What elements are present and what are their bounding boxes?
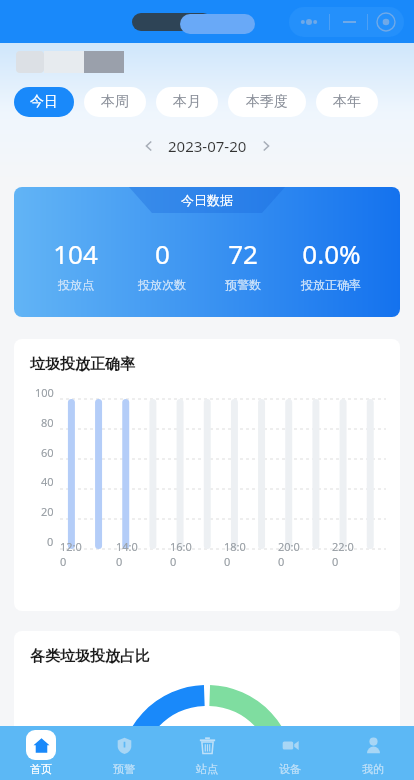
staticText: 2023-07-20 xyxy=(168,136,247,156)
button[interactable]: 本年 xyxy=(316,87,378,117)
button[interactable]: 今日数据 xyxy=(14,187,400,317)
staticText: 站点 xyxy=(196,762,218,776)
staticText: 设备 xyxy=(279,762,301,776)
staticText: 14:00 xyxy=(116,539,143,569)
staticText: 80 xyxy=(41,415,54,430)
staticText: 本月 xyxy=(173,93,201,111)
staticText: 各类垃圾投放占比 xyxy=(30,647,150,666)
staticText: 16:00 xyxy=(170,539,197,569)
staticText: 投放点 xyxy=(58,277,94,292)
staticText: 40 xyxy=(41,474,54,489)
staticText: 22:00 xyxy=(332,539,359,569)
staticText: 预警 xyxy=(113,762,135,776)
button[interactable]: 本周 xyxy=(84,87,146,117)
button[interactable]: Close xyxy=(371,7,401,37)
staticText: 104 xyxy=(53,236,98,271)
button[interactable]: Previous day xyxy=(136,133,162,159)
staticText: 预警数 xyxy=(225,277,261,292)
staticText: 投放正确率 xyxy=(301,277,361,292)
staticText: 本年 xyxy=(333,93,361,111)
button[interactable]: 首页 xyxy=(0,726,82,780)
staticText: 本周 xyxy=(101,93,129,111)
button[interactable]: 各类垃圾投放占比 xyxy=(14,631,400,771)
button[interactable]: More xyxy=(292,7,326,37)
staticText: 首页 xyxy=(30,762,52,776)
button[interactable]: Next day xyxy=(253,133,279,159)
button[interactable]: 垃圾投放正确率 xyxy=(14,339,400,611)
staticText: 100 xyxy=(35,385,54,400)
staticText: 72 xyxy=(228,236,258,271)
button[interactable]: 我的 xyxy=(331,726,414,780)
button[interactable]: 站点 xyxy=(165,726,248,780)
button[interactable]: 本季度 xyxy=(228,87,306,117)
staticText: 今日 xyxy=(30,93,58,111)
staticText: 0.0% xyxy=(302,236,361,271)
staticText: 垃圾投放正确率 xyxy=(30,355,135,374)
staticText: 60 xyxy=(41,445,54,460)
staticText: 18:00 xyxy=(224,539,251,569)
staticText: 12:00 xyxy=(60,539,88,569)
staticText: 20 xyxy=(41,504,54,519)
button[interactable]: 本月 xyxy=(156,87,218,117)
staticText: 我的 xyxy=(362,762,384,776)
staticText: 20:00 xyxy=(278,539,305,569)
button[interactable]: 今日 xyxy=(14,87,74,117)
button[interactable]: 预警 xyxy=(82,726,165,780)
staticText: 投放次数 xyxy=(138,277,186,292)
staticText: 0 xyxy=(155,236,170,271)
staticText: 今日数据 xyxy=(181,192,233,208)
staticText: 本季度 xyxy=(246,93,288,111)
staticText: 0 xyxy=(47,534,54,549)
button[interactable]: 设备 xyxy=(248,726,331,780)
button[interactable]: Minimize xyxy=(334,7,364,37)
